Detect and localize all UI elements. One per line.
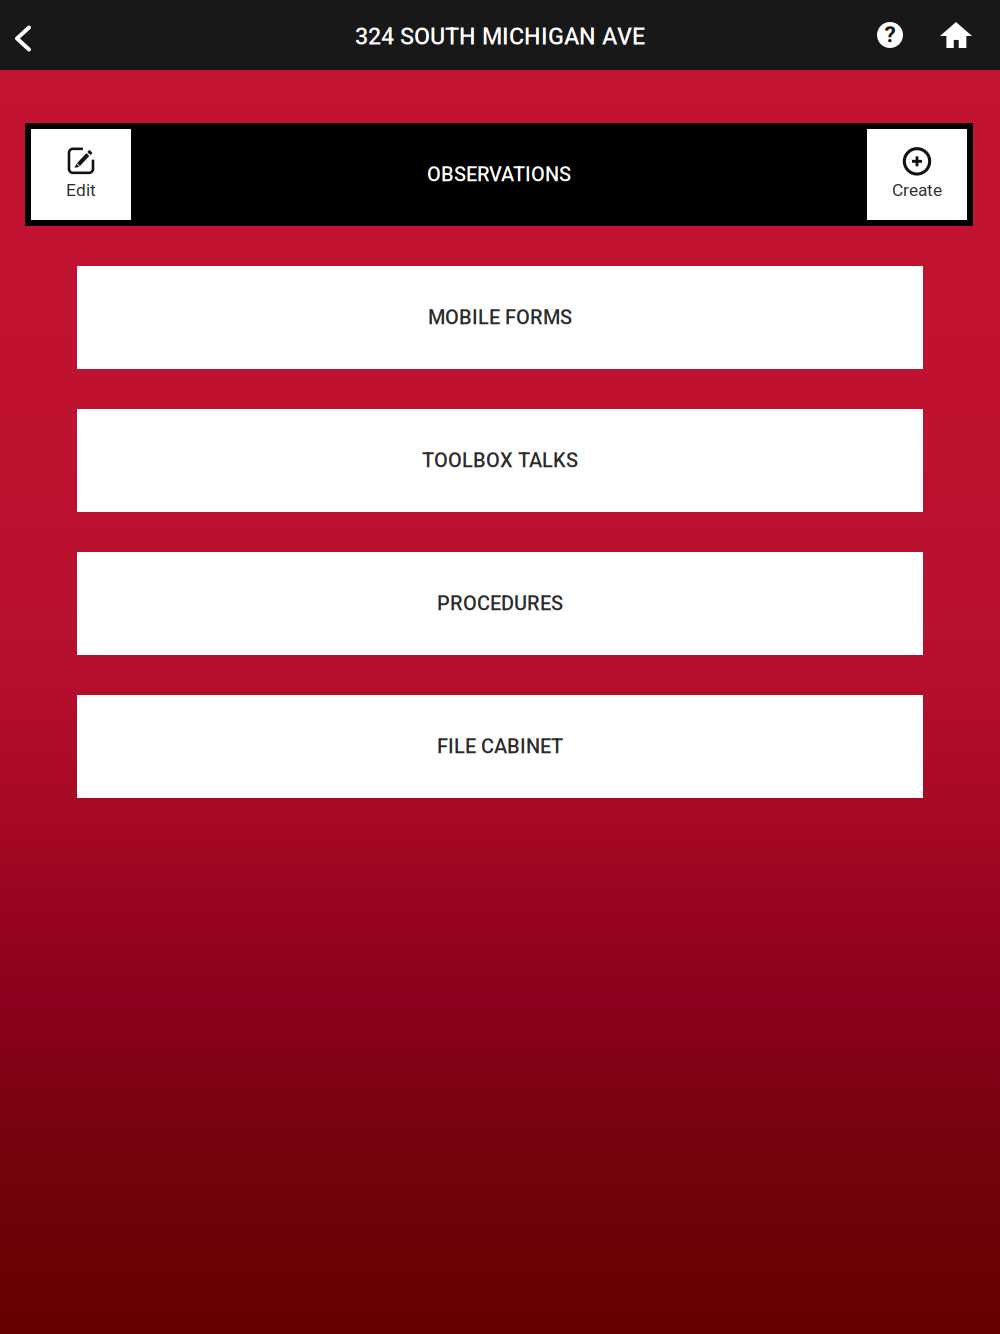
button[interactable]: Home xyxy=(920,0,1000,70)
staticText: 324 SOUTH MICHIGAN AVE xyxy=(355,23,645,50)
button[interactable]: FILE CABINET xyxy=(77,695,923,798)
button[interactable]: MOBILE FORMS xyxy=(77,266,923,369)
staticText: TOOLBOX TALKS xyxy=(422,449,578,472)
button[interactable]: TOOLBOX TALKS xyxy=(77,409,923,512)
staticText: PROCEDURES xyxy=(437,592,563,615)
staticText: FILE CABINET xyxy=(437,735,563,758)
button[interactable]: PROCEDURES xyxy=(77,552,923,655)
staticText: MOBILE FORMS xyxy=(428,306,572,329)
button[interactable]: Edit xyxy=(31,129,131,220)
staticText: OBSERVATIONS xyxy=(427,163,571,186)
staticText: Edit xyxy=(66,180,96,200)
staticText: Create xyxy=(892,180,942,200)
button[interactable]: Back xyxy=(0,0,50,70)
button[interactable]: Help xyxy=(862,0,920,70)
button[interactable]: Create xyxy=(867,129,967,220)
staticText: ? xyxy=(884,21,895,48)
